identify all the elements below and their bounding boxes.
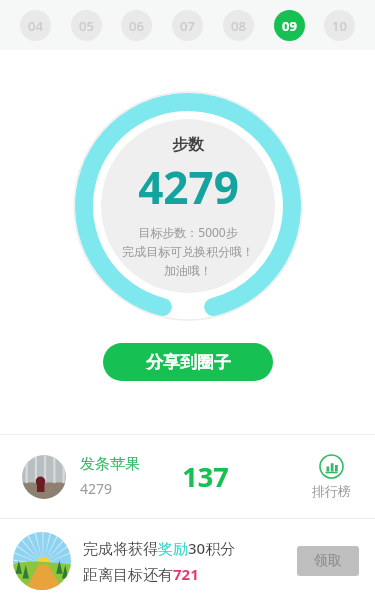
staticText: 04 [28, 17, 43, 35]
staticText: 分享到圈子 [146, 352, 231, 373]
button[interactable]: 领取 [297, 546, 359, 576]
staticText: 步数 [172, 135, 204, 155]
staticText: 4279 [138, 157, 239, 217]
staticText: 发条苹果 [80, 455, 140, 474]
button[interactable]: 分享到圈子 [103, 343, 273, 381]
staticText: 领取 [314, 552, 342, 570]
staticText: 加油哦！ [164, 263, 212, 278]
button[interactable]: 04 [20, 10, 51, 41]
staticText: 目标步数：5000步 [138, 224, 238, 240]
staticText: 完成将获得奖励30积分 [83, 538, 236, 558]
button[interactable]: 06 [121, 10, 152, 41]
button[interactable]: 09 [274, 10, 305, 41]
button[interactable]: 08 [223, 10, 254, 41]
button[interactable]: 发条苹果 [0, 435, 375, 518]
staticText: 07 [180, 17, 195, 35]
staticText: 10 [332, 17, 347, 35]
staticText: 137 [182, 458, 229, 495]
staticText: 09 [282, 17, 297, 35]
staticText: 08 [231, 17, 246, 35]
staticText: 排行榜 [312, 483, 351, 499]
button[interactable]: 05 [71, 10, 102, 41]
staticText: 06 [129, 17, 144, 35]
staticText: 距离目标还有721 [83, 564, 199, 584]
button[interactable]: 排行榜 [306, 450, 357, 503]
staticText: 4279 [80, 479, 113, 498]
staticText: 完成目标可兑换积分哦！ [122, 244, 254, 259]
staticText: 05 [79, 17, 94, 35]
button[interactable]: 07 [172, 10, 203, 41]
button[interactable]: 10 [324, 10, 355, 41]
